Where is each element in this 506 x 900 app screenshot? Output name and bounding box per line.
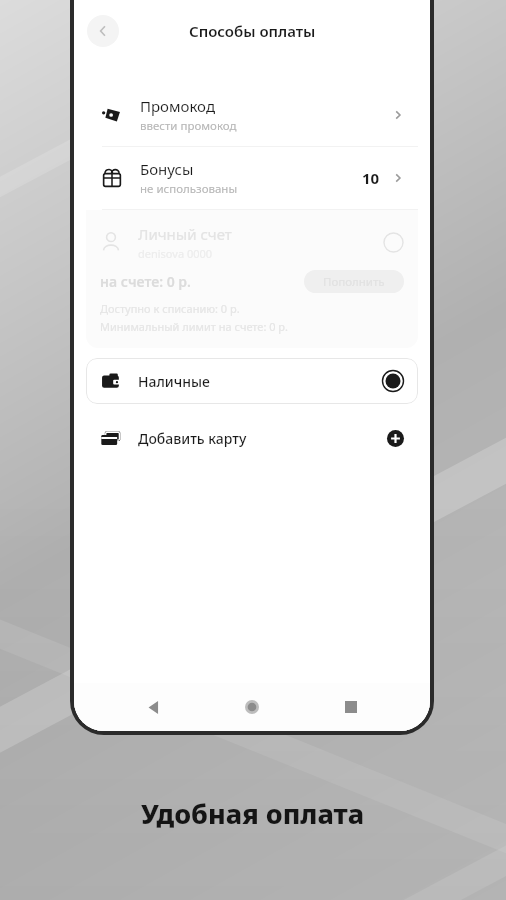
other: Промокод bbox=[101, 104, 123, 126]
staticText: Промокод bbox=[140, 96, 215, 116]
button[interactable]: Бонусы bbox=[86, 147, 418, 209]
staticText: 10 bbox=[362, 168, 380, 188]
other: Добавить карту bbox=[100, 427, 122, 449]
button[interactable]: Добавить карту bbox=[86, 416, 418, 460]
staticText: Доступно к списанию: 0 р. bbox=[100, 301, 240, 316]
other: Выбрано: Наличные bbox=[382, 370, 404, 392]
staticText: Способы оплаты bbox=[189, 21, 316, 41]
other: Бонусы bbox=[101, 167, 123, 189]
staticText: Добавить карту bbox=[138, 429, 247, 448]
staticText: Бонусы bbox=[140, 159, 194, 179]
staticText: Наличные bbox=[138, 372, 210, 391]
other: Открыть bbox=[392, 172, 404, 184]
button[interactable]: Промокод bbox=[86, 84, 418, 146]
other: Открыть bbox=[392, 109, 404, 121]
button[interactable]: Обзор bbox=[331, 687, 371, 727]
other: Наличные bbox=[101, 371, 122, 392]
staticText: на счете: 0 р. bbox=[100, 272, 191, 291]
staticText: не использованы bbox=[140, 181, 238, 197]
button[interactable]: Назад bbox=[87, 15, 119, 47]
staticText: Пополнить bbox=[323, 274, 385, 290]
button[interactable]: Домой bbox=[232, 687, 272, 727]
button[interactable]: Пополнить bbox=[304, 270, 404, 293]
staticText: Удобная оплата bbox=[141, 795, 365, 832]
staticText: ввести промокод bbox=[140, 118, 237, 134]
staticText: Минимальный лимит на счете: 0 р. bbox=[100, 319, 288, 334]
staticText: denisova 0000 bbox=[138, 246, 213, 261]
button[interactable]: Наличные bbox=[86, 358, 418, 404]
button[interactable]: Личный счет bbox=[86, 210, 418, 348]
other: Добавить bbox=[387, 430, 404, 447]
staticText: Личный счет bbox=[138, 224, 232, 244]
button[interactable]: Назад bbox=[133, 687, 173, 727]
